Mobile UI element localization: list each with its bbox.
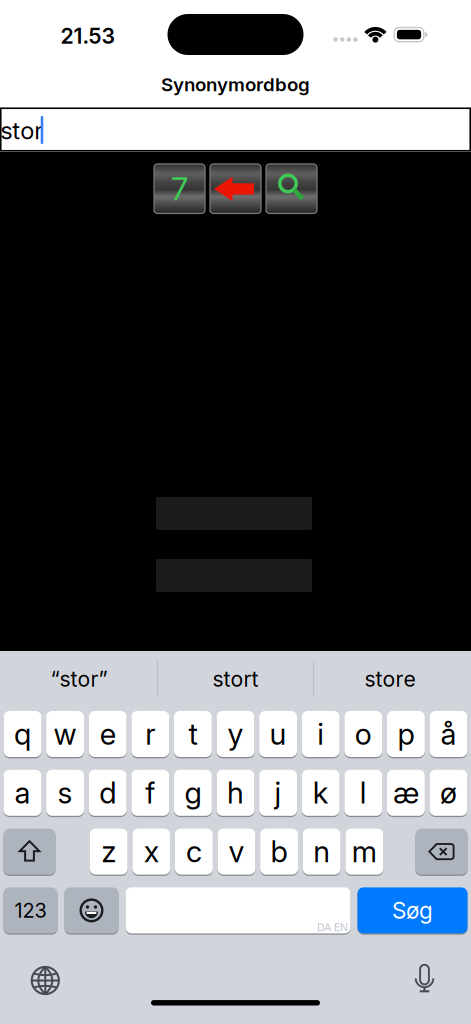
staticText: k [313, 775, 329, 810]
button[interactable]: t [174, 711, 212, 757]
staticText: h [227, 775, 244, 810]
staticText: x [144, 834, 159, 869]
button[interactable]: Space [125, 887, 350, 933]
staticText: z [101, 834, 116, 869]
staticText: store [364, 666, 415, 692]
button[interactable]: h [217, 770, 254, 816]
button[interactable]: x [132, 829, 170, 875]
button[interactable]: Numbers [3, 887, 57, 933]
button[interactable]: d [89, 770, 127, 816]
staticText: 7 [171, 170, 188, 208]
button[interactable]: stort [160, 653, 310, 705]
staticText: ø [440, 775, 457, 810]
button[interactable]: v [218, 829, 255, 875]
staticText: p [397, 717, 414, 751]
button[interactable]: e [89, 711, 127, 757]
staticText: q [14, 717, 31, 751]
button[interactable]: store [315, 653, 465, 705]
button[interactable]: Dictation [407, 963, 441, 997]
staticText: v [228, 834, 244, 869]
button[interactable]: c [175, 829, 213, 875]
button[interactable]: å [430, 711, 467, 757]
staticText: “stor” [50, 666, 107, 692]
staticText: n [313, 834, 330, 869]
button[interactable]: i [302, 711, 340, 757]
button[interactable]: æ [387, 770, 425, 816]
button[interactable]: s [46, 770, 84, 816]
button[interactable]: Next keyboard [28, 963, 62, 997]
staticText: o [355, 717, 372, 751]
staticText: y [227, 717, 243, 751]
staticText: Søg [392, 897, 433, 924]
button[interactable]: o [344, 711, 382, 757]
staticText: å [440, 717, 456, 751]
button[interactable]: w [46, 711, 84, 757]
button[interactable]: u [259, 711, 297, 757]
staticText: stort [212, 666, 258, 692]
button[interactable]: a [4, 770, 41, 816]
button[interactable]: ø [430, 770, 467, 816]
staticText: c [186, 834, 202, 869]
staticText: m [352, 834, 377, 869]
staticText: u [270, 717, 287, 751]
button[interactable]: g [174, 770, 212, 816]
staticText: a [14, 775, 30, 810]
button[interactable]: Shift [3, 829, 55, 875]
button[interactable]: l [344, 770, 382, 816]
staticText: 123 [14, 899, 46, 922]
staticText: w [54, 717, 77, 751]
staticText: stor [0, 116, 43, 145]
staticText: e [100, 717, 116, 751]
button[interactable]: “stor” [4, 653, 154, 705]
button[interactable]: p [387, 711, 425, 757]
button[interactable]: m [345, 829, 383, 875]
button[interactable]: Search [266, 164, 317, 213]
staticText: d [99, 775, 116, 810]
button[interactable]: j [259, 770, 297, 816]
staticText: s [58, 775, 73, 810]
button[interactable]: y [217, 711, 254, 757]
button[interactable]: r [131, 711, 169, 757]
staticText: f [145, 775, 155, 810]
button[interactable]: Search text field: stor [0, 107, 471, 151]
button[interactable]: q [4, 711, 41, 757]
staticText: 21.53 [60, 23, 115, 49]
button[interactable]: 7 results [154, 164, 205, 213]
button[interactable]: k [302, 770, 340, 816]
button[interactable]: Delete [415, 829, 467, 875]
staticText: b [271, 834, 288, 869]
staticText: g [184, 775, 201, 810]
button[interactable]: Søg [357, 887, 467, 933]
staticText: æ [393, 775, 419, 810]
button[interactable]: Back [210, 164, 261, 213]
staticText: t [188, 717, 197, 751]
button[interactable]: z [90, 829, 128, 875]
button[interactable]: f [131, 770, 169, 816]
staticText: r [145, 717, 155, 751]
staticText: DA EN [317, 921, 348, 934]
button[interactable]: Emoji [64, 887, 118, 933]
staticText: i [317, 717, 324, 751]
button[interactable]: n [303, 829, 341, 875]
staticText: j [275, 775, 282, 810]
staticText: l [360, 775, 367, 810]
staticText: Synonymordbog [161, 73, 310, 95]
button[interactable]: b [260, 829, 298, 875]
